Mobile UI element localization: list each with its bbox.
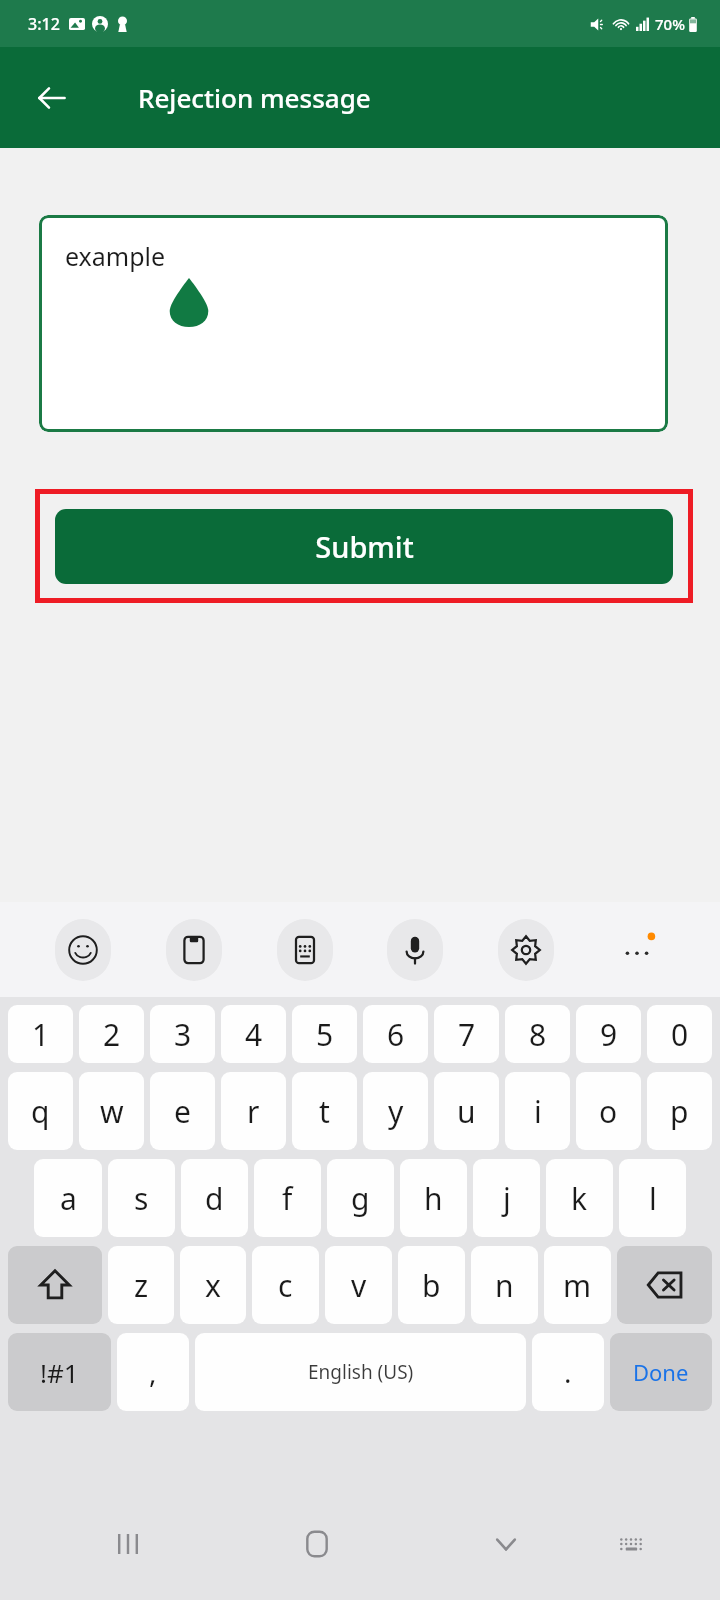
button[interactable]: i [505,1072,570,1150]
button[interactable]: r [221,1072,286,1150]
staticText: 0 [671,1014,689,1055]
button[interactable]: s [108,1159,175,1237]
staticText: English (US) [308,1359,414,1385]
button[interactable]: Submit [55,509,673,584]
button[interactable]: English (US) [195,1333,526,1411]
staticText: 6 [387,1014,405,1055]
button[interactable]: q [8,1072,73,1150]
button[interactable]: v [325,1246,392,1324]
button[interactable]: 6 [363,1005,428,1063]
staticText: 70% [655,14,685,34]
staticText: n [495,1265,514,1306]
staticText: Submit [315,527,414,566]
button[interactable]: z [108,1246,174,1324]
staticText: b [422,1265,441,1306]
button[interactable]: y [363,1072,428,1150]
staticText: c [278,1265,293,1306]
button[interactable]: 8 [505,1005,570,1063]
button[interactable]: example [39,215,668,432]
button[interactable]: Hide keyboard [475,1513,537,1575]
button[interactable]: g [327,1159,394,1237]
button[interactable]: k [546,1159,613,1237]
staticText: i [534,1091,542,1132]
button[interactable]: e [150,1072,215,1150]
button[interactable]: Done [610,1333,712,1411]
staticText: g [351,1178,370,1219]
button[interactable]: m [544,1246,611,1324]
staticText: a [60,1178,77,1219]
button[interactable]: n [471,1246,538,1324]
button[interactable]: Recent apps [97,1513,159,1575]
button[interactable]: t [292,1072,357,1150]
staticText: k [571,1178,588,1219]
button[interactable]: Change keyboard [600,1513,662,1575]
button[interactable]: Voice input [387,919,443,981]
button[interactable]: 9 [576,1005,641,1063]
button[interactable]: c [252,1246,319,1324]
button[interactable]: 5 [292,1005,357,1063]
button[interactable]: u [434,1072,499,1150]
staticText: !#1 [40,1355,79,1390]
staticText: 4 [245,1014,263,1055]
button[interactable]: h [400,1159,467,1237]
staticText: 2 [103,1014,121,1055]
staticText: m [563,1265,592,1306]
button[interactable]: l [619,1159,686,1237]
staticText: Rejection message [138,80,371,115]
staticText: e [174,1091,191,1132]
staticText: t [319,1091,330,1132]
staticText: d [205,1178,224,1219]
staticText: q [31,1091,50,1132]
button[interactable]: d [181,1159,248,1237]
button[interactable]: 2 [79,1005,144,1063]
staticText: r [247,1091,260,1132]
staticText: o [599,1091,618,1132]
staticText: u [457,1091,476,1132]
staticText: 1 [32,1014,50,1055]
staticText: j [503,1178,511,1219]
staticText: example [65,239,166,273]
button[interactable]: Back [24,70,80,126]
staticText: . [564,1353,572,1391]
staticText: v [351,1265,367,1306]
button[interactable]: o [576,1072,641,1150]
staticText: x [205,1265,221,1306]
staticText: w [100,1091,124,1132]
button[interactable]: Text modes [277,919,333,981]
staticText: , [149,1353,157,1391]
button[interactable]: b [398,1246,465,1324]
staticText: 5 [316,1014,334,1055]
button[interactable]: 7 [434,1005,499,1063]
button[interactable]: Keyboard settings [498,919,554,981]
staticText: s [134,1178,149,1219]
button[interactable]: j [473,1159,540,1237]
button[interactable]: Emoji [55,919,111,981]
staticText: 8 [529,1014,547,1055]
button[interactable]: 0 [647,1005,712,1063]
button[interactable]: f [254,1159,321,1237]
button[interactable]: 1 [8,1005,73,1063]
button[interactable]: . [532,1333,604,1411]
button[interactable]: More options [609,922,665,978]
staticText: 3:12 [28,13,60,35]
button[interactable]: , [117,1333,189,1411]
staticText: 7 [458,1014,476,1055]
button[interactable]: 4 [221,1005,286,1063]
button[interactable]: w [79,1072,144,1150]
button[interactable]: a [34,1159,102,1237]
staticText: l [649,1178,657,1219]
button[interactable]: Home [286,1513,348,1575]
staticText: h [424,1178,443,1219]
staticText: y [388,1091,404,1132]
button[interactable]: !#1 [8,1333,111,1411]
button[interactable]: p [647,1072,712,1150]
staticText: 9 [600,1014,618,1055]
button[interactable]: Backspace [617,1246,712,1324]
button[interactable]: 3 [150,1005,215,1063]
button[interactable]: x [180,1246,246,1324]
button[interactable]: Shift [8,1246,102,1324]
staticText: f [282,1178,293,1219]
staticText: 3 [174,1014,192,1055]
staticText: p [670,1091,689,1132]
button[interactable]: Clipboard [166,919,222,981]
